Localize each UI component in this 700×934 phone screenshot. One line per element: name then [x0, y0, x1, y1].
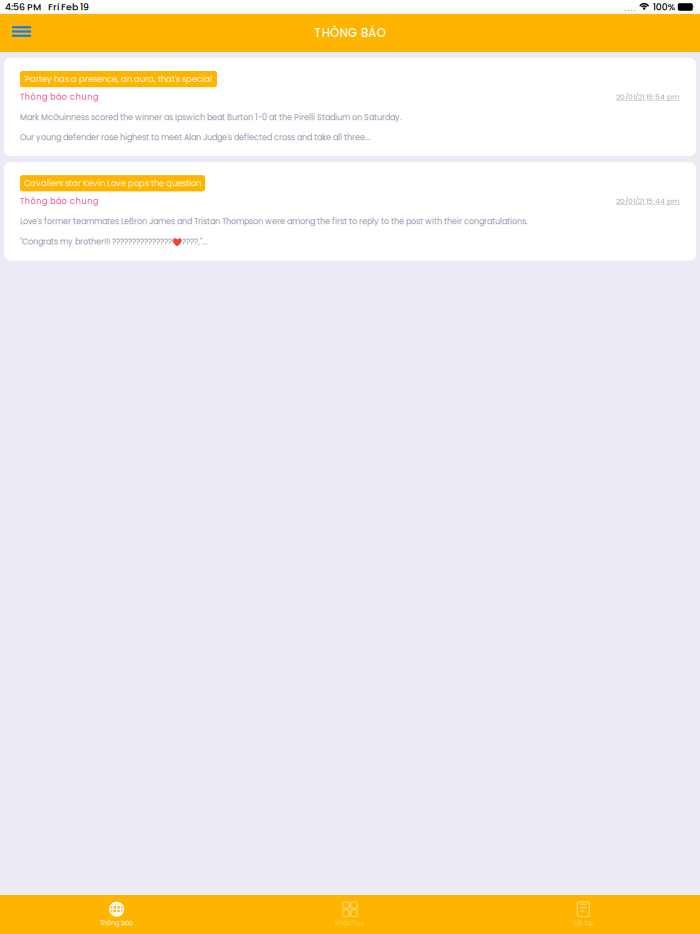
- staticText: Cavaliers star Kevin Love pops the quest…: [24, 177, 201, 189]
- staticText: chung: [70, 195, 98, 207]
- button[interactable]: Khóa học: [233, 895, 467, 934]
- staticText: THÔNG BÁO: [314, 25, 386, 41]
- button[interactable]: Bài tập: [467, 895, 700, 934]
- staticText: 20/01/21 15:44 pm: [616, 196, 680, 206]
- button[interactable]: 'Partey has a presence, an aura, that's …: [4, 58, 696, 156]
- staticText: Fri Feb 19: [48, 0, 89, 14]
- staticText: "Congrats my brother!!! ???????????????❤…: [20, 236, 208, 247]
- button[interactable]: Cavaliers star Kevin Love pops the quest…: [4, 162, 696, 260]
- button[interactable]: Menu: [6, 12, 37, 53]
- staticText: Our young defender rose highest to meet …: [20, 132, 371, 143]
- staticText: 100%: [653, 0, 675, 14]
- staticText: báo: [50, 91, 67, 103]
- staticText: báo: [50, 195, 67, 207]
- staticText: Love's former teammates LeBron James and…: [20, 216, 528, 227]
- staticText: Thông: [20, 195, 47, 207]
- staticText: 4:56 PM: [5, 0, 41, 14]
- button[interactable]: Thông báo: [0, 895, 233, 934]
- staticText: 20/01/21 15:54 pm: [616, 92, 680, 102]
- staticText: Mark McGuinness scored the winner as Ips…: [20, 112, 402, 123]
- staticText: chung: [70, 91, 98, 103]
- staticText: Thông báo: [100, 919, 133, 927]
- staticText: Thông: [20, 91, 47, 103]
- staticText: 'Partey has a presence, an aura, that's …: [24, 73, 213, 85]
- staticText: Bài tập: [573, 919, 594, 927]
- staticText: Khóa học: [335, 919, 365, 927]
